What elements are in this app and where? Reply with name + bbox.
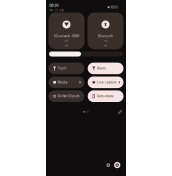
button[interactable]: Bluetooth — [87, 12, 123, 49]
staticText: Bluetooth — [98, 34, 113, 38]
staticText: On — [104, 40, 107, 43]
staticText: Auto-rotate — [97, 94, 114, 98]
button[interactable]: Alarm — [88, 63, 123, 74]
button[interactable]: Do Not Disturb — [48, 90, 84, 102]
staticText: 5G network (SIM) — [53, 34, 79, 38]
staticText: Tue, 23 Sep — [49, 9, 64, 12]
staticText: Torch — [57, 66, 66, 70]
staticText: 100% — [111, 6, 119, 9]
staticText: Off — [64, 40, 68, 43]
staticText: Alarm — [97, 66, 106, 70]
staticText: Media — [57, 80, 67, 84]
staticText: Live caption — [97, 80, 117, 84]
button[interactable]: Power — [113, 161, 122, 170]
staticText: Do Not Disturb — [57, 94, 79, 98]
button[interactable]: Auto-rotate — [88, 90, 123, 102]
button[interactable]: Media — [48, 76, 84, 88]
button[interactable]: Edit tiles — [116, 108, 124, 116]
button[interactable]: Settings — [104, 161, 113, 169]
staticText: 08:20 — [49, 3, 58, 7]
button[interactable]: Torch — [48, 63, 84, 74]
button[interactable]: Live caption — [88, 76, 123, 88]
button[interactable]: 5G network (SIM) — [48, 12, 84, 49]
